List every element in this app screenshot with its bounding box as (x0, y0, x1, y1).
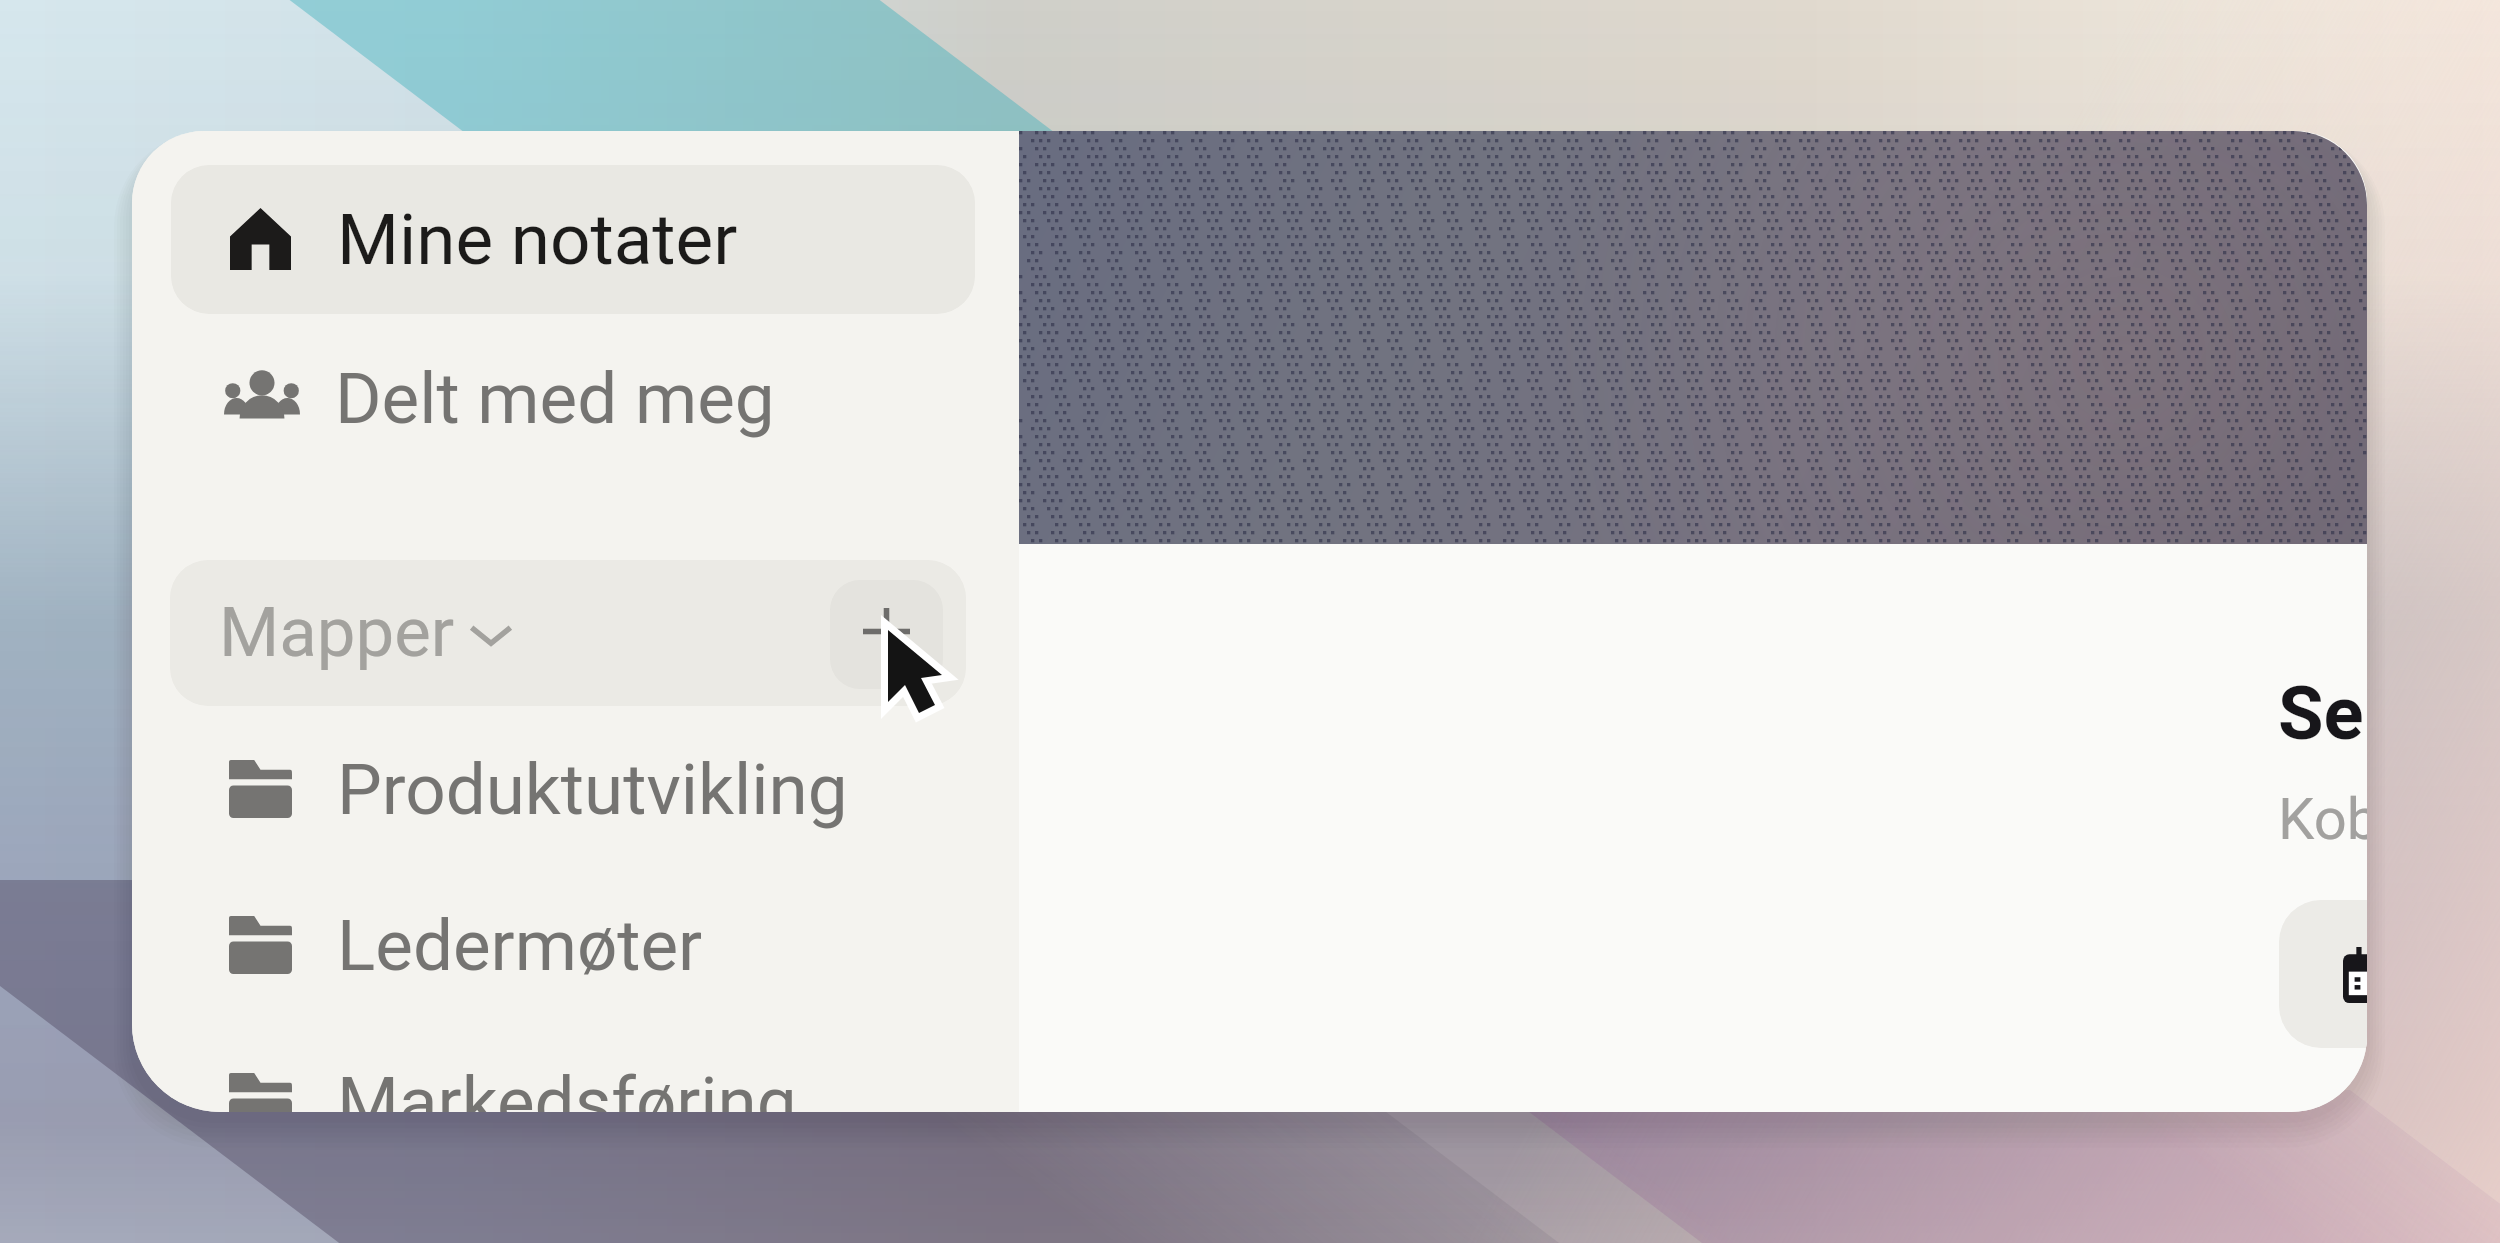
button[interactable]: Kalender (2279, 900, 2367, 1048)
staticText: Mine notater (337, 198, 738, 281)
button[interactable]: Mapper (170, 560, 966, 706)
button[interactable]: Mine notater (171, 165, 975, 314)
staticText: Se (2278, 670, 2364, 757)
button[interactable]: Ny mappe (830, 580, 943, 689)
staticText: Mapper (219, 592, 455, 673)
staticText: Ledermøter (337, 904, 703, 987)
button[interactable]: Produktutvikling (171, 719, 975, 859)
button[interactable]: Markedsføring (171, 1032, 975, 1112)
staticText: Produktutvikling (337, 748, 848, 831)
staticText: Markedsføring (337, 1061, 797, 1112)
button[interactable]: Ledermøter (171, 875, 975, 1015)
staticText: Kob (2278, 785, 2367, 853)
button[interactable]: Delt med meg (335, 357, 775, 440)
